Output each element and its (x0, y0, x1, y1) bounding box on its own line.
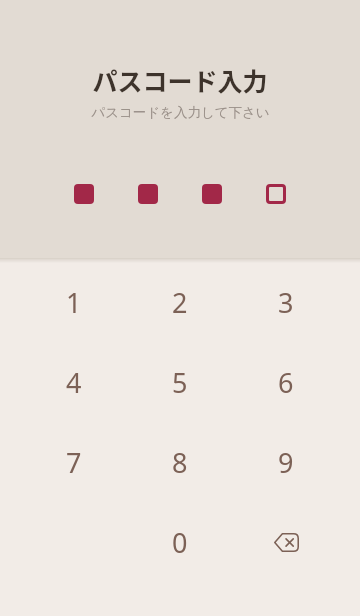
button[interactable]: 6 (233, 342, 339, 422)
staticText: 3 (278, 284, 294, 321)
staticText: 0 (172, 524, 188, 561)
button[interactable]: 1 (21, 262, 127, 342)
staticText: 4 (66, 364, 82, 401)
button[interactable]: Backspace (233, 502, 339, 582)
staticText: パスコード入力 (92, 62, 268, 98)
staticText: 7 (66, 444, 82, 481)
staticText: 8 (172, 444, 188, 481)
button[interactable]: 4 (21, 342, 127, 422)
other: Backspace (269, 525, 303, 559)
staticText: 5 (172, 364, 188, 401)
button[interactable]: 2 (127, 262, 233, 342)
button[interactable]: 7 (21, 422, 127, 502)
button[interactable]: 3 (233, 262, 339, 342)
button[interactable]: 0 (127, 502, 233, 582)
staticText: 2 (172, 284, 188, 321)
staticText: 9 (278, 444, 294, 481)
button[interactable]: 8 (127, 422, 233, 502)
button[interactable]: 5 (127, 342, 233, 422)
staticText: 6 (278, 364, 294, 401)
staticText: 1 (66, 284, 82, 321)
staticText: パスコードを入力して下さい (91, 104, 270, 121)
button[interactable]: 9 (233, 422, 339, 502)
